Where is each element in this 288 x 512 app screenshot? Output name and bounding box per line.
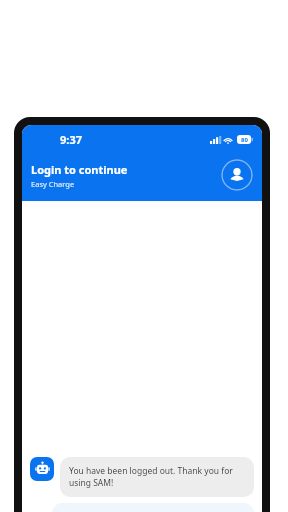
staticText: 9:37 <box>60 132 82 147</box>
button[interactable]: Account <box>221 159 253 191</box>
staticText: 80 <box>241 136 248 144</box>
staticText: You have been logged out. Thank you for … <box>69 465 245 489</box>
button[interactable]: Assistant <box>30 457 54 481</box>
button[interactable]: You have been logged out. Thank you for … <box>60 457 254 497</box>
staticText: Easy Charge <box>31 179 75 189</box>
staticText: Login to continue <box>31 162 128 177</box>
